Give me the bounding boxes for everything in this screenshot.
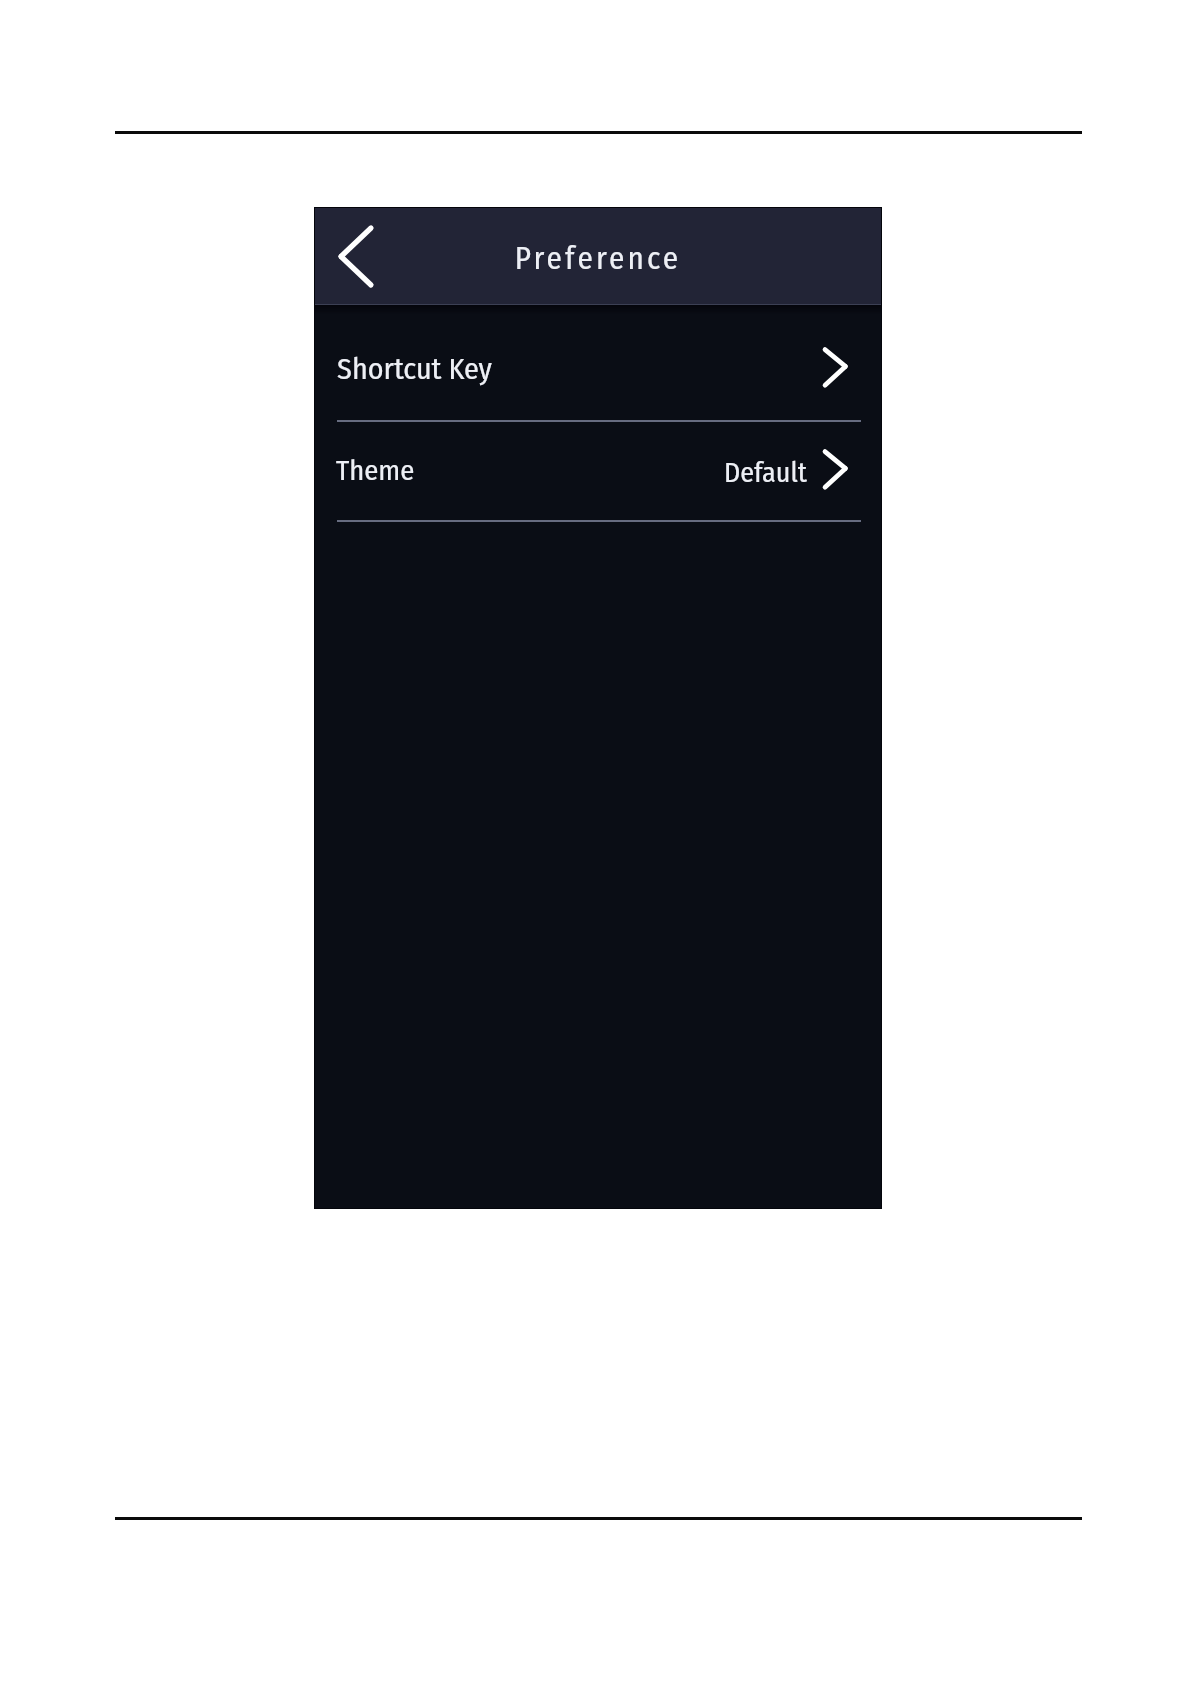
button[interactable]: Shortcut Key <box>315 306 881 421</box>
button[interactable]: Back <box>322 219 398 295</box>
staticText: Shortcut Key <box>337 351 492 387</box>
staticText: Preference <box>314 240 882 277</box>
button[interactable]: Theme <box>315 421 881 520</box>
staticText: Default <box>724 456 807 490</box>
staticText: Theme <box>336 453 415 487</box>
